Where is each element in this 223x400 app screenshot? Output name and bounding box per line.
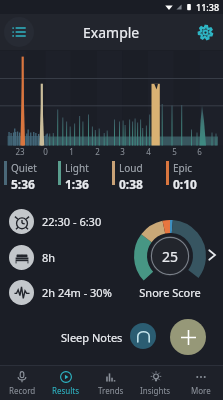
staticText: Quiet: [11, 161, 37, 175]
staticText: Epic: [173, 161, 193, 175]
staticText: Insights: [140, 385, 171, 396]
button[interactable]: 22:30 - 6:30: [9, 209, 102, 234]
staticText: 5:36: [11, 176, 35, 192]
staticText: Loud: [119, 161, 143, 175]
staticText: 0:38: [119, 176, 143, 192]
staticText: 23: [15, 146, 25, 157]
button[interactable]: 8h: [9, 245, 56, 270]
button[interactable]: Sleep notes: [130, 323, 156, 349]
staticText: Results: [52, 385, 80, 396]
staticText: 5: [172, 146, 177, 157]
staticText: 1:36: [65, 176, 89, 192]
button[interactable]: Snore score details: [203, 246, 221, 264]
button[interactable]: 2h 24m - 30%: [9, 280, 112, 305]
button[interactable]: Record: [0, 366, 44, 400]
staticText: Trends: [98, 385, 124, 396]
staticText: 4: [146, 146, 151, 157]
button[interactable]: More: [178, 366, 223, 400]
button[interactable]: Results: [44, 366, 88, 400]
button[interactable]: Settings: [192, 19, 218, 45]
staticText: 6: [197, 146, 202, 157]
staticText: 3: [120, 146, 125, 157]
staticText: 8h: [42, 250, 56, 265]
staticText: 1: [69, 146, 74, 157]
button[interactable]: Open navigation menu: [4, 17, 34, 47]
staticText: 22:30 - 6:30: [42, 214, 102, 229]
button[interactable]: 25: [134, 220, 206, 292]
staticText: Sleep Notes: [61, 330, 123, 345]
staticText: Snore Score: [125, 285, 215, 300]
staticText: 2: [95, 146, 100, 157]
staticText: Example: [83, 23, 140, 42]
staticText: 2h 24m - 30%: [42, 285, 112, 300]
staticText: 0:10: [173, 176, 197, 192]
staticText: 0: [43, 146, 48, 157]
staticText: 25: [162, 247, 179, 266]
staticText: Record: [9, 385, 36, 396]
staticText: 11:38: [196, 1, 220, 13]
button[interactable]: Insights: [133, 366, 178, 400]
staticText: Light: [65, 161, 89, 175]
button[interactable]: Add: [170, 319, 206, 355]
button[interactable]: Trends: [88, 366, 133, 400]
staticText: More: [191, 385, 211, 396]
